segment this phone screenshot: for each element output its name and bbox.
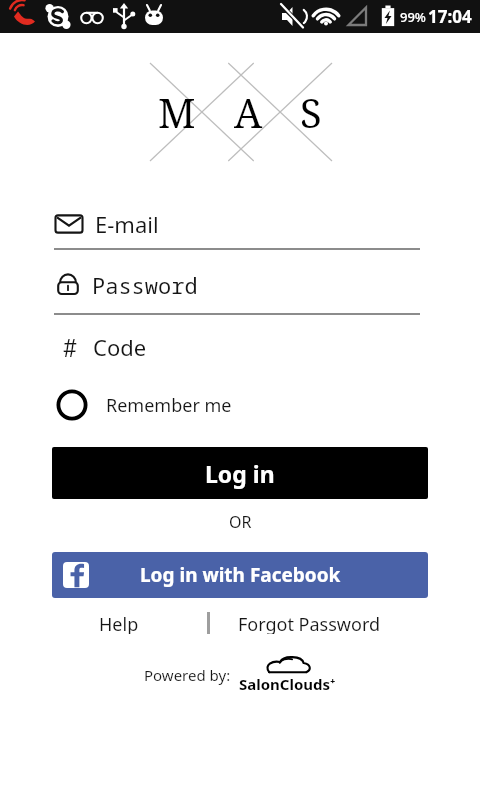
- staticText: E-mail: [95, 209, 159, 239]
- staticText: A: [234, 85, 263, 139]
- staticText: #: [63, 330, 77, 364]
- staticText: M: [158, 85, 196, 139]
- staticText: SalonClouds⁺: [239, 674, 336, 694]
- staticText: Powered by:: [144, 665, 231, 685]
- staticText: Log in with Facebook: [140, 562, 341, 588]
- staticText: Remember me: [106, 393, 232, 418]
- staticText: OR: [229, 511, 252, 533]
- staticText: Forgot Password: [238, 612, 381, 634]
- other: Password: [54, 271, 82, 299]
- staticText: Password: [92, 270, 198, 300]
- button[interactable]: Password: [54, 264, 420, 306]
- staticText: 17:04: [428, 5, 472, 28]
- other: E-mail: [54, 212, 84, 236]
- button[interactable]: Help: [89, 608, 149, 638]
- staticText: 99%: [400, 8, 426, 26]
- staticText: S: [300, 85, 322, 139]
- button[interactable]: #: [54, 326, 420, 368]
- button[interactable]: Log in: [52, 447, 428, 499]
- button[interactable]: Log in with Facebook: [52, 552, 428, 598]
- staticText: Log in: [205, 458, 275, 489]
- staticText: Help: [99, 612, 139, 634]
- staticText: Code: [93, 332, 147, 362]
- button[interactable]: E-mail: [54, 203, 420, 245]
- button[interactable]: Forgot Password: [228, 608, 391, 638]
- button[interactable]: Remember me: [56, 384, 232, 426]
